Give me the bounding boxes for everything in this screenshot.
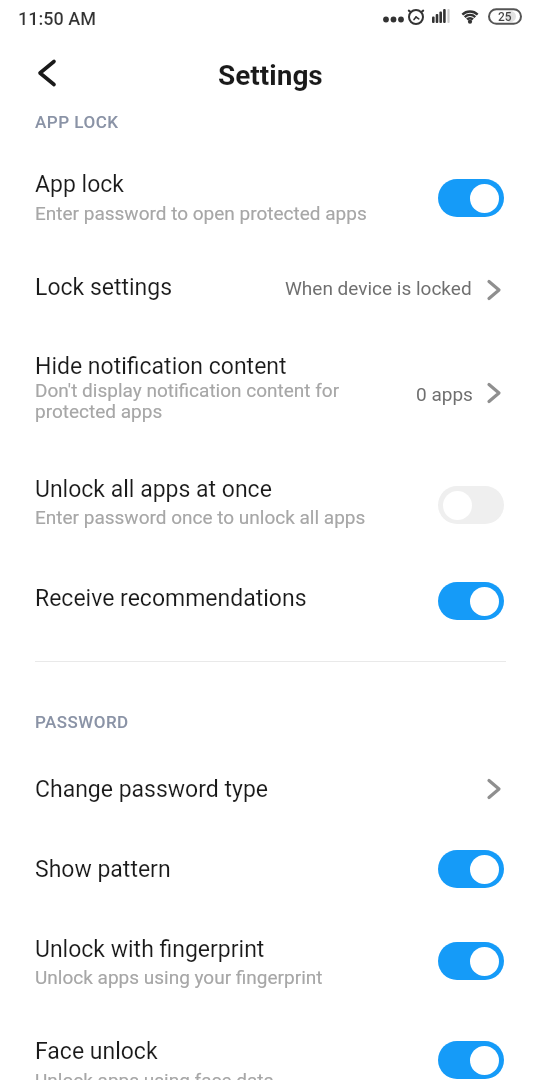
staticText: Settings [218, 59, 323, 92]
button[interactable] [0, 245, 540, 340]
button[interactable] [0, 145, 540, 245]
button[interactable] [36, 60, 60, 86]
staticText: Unlock all apps at once [35, 476, 272, 503]
staticText: Enter password once to unlock all apps [35, 506, 366, 528]
button[interactable] [438, 942, 504, 980]
button[interactable] [438, 179, 504, 217]
button[interactable] [0, 750, 540, 830]
staticText: 0 apps [416, 383, 473, 405]
button[interactable] [0, 450, 540, 560]
button[interactable] [438, 850, 504, 888]
staticText: App lock [35, 171, 124, 198]
staticText: Receive recommendations [35, 585, 307, 612]
button[interactable] [438, 1041, 504, 1079]
staticText: Face unlock [35, 1038, 158, 1065]
staticText: When device is locked [285, 277, 472, 299]
staticText: Enter password to open protected apps [35, 202, 367, 224]
staticText: PASSWORD [35, 712, 129, 732]
staticText: Don't display notification content for p… [35, 379, 365, 423]
button[interactable] [0, 340, 540, 450]
button[interactable] [0, 1012, 540, 1080]
staticText: Change password type [35, 776, 269, 803]
staticText: Show pattern [35, 856, 171, 883]
staticText: 11:50 AM [18, 8, 96, 29]
staticText: Unlock with fingerprint [35, 936, 265, 963]
button[interactable] [438, 486, 504, 524]
staticText: Unlock apps using your fingerprint [35, 966, 323, 988]
button[interactable] [0, 830, 540, 910]
staticText: Hide notification content [35, 353, 287, 380]
staticText: 25 [498, 10, 512, 24]
staticText: Lock settings [35, 274, 173, 301]
staticText: Unlock apps using face data [35, 1069, 274, 1080]
button[interactable] [0, 910, 540, 1012]
button[interactable] [0, 560, 540, 645]
button[interactable] [438, 582, 504, 620]
staticText: APP LOCK [35, 112, 119, 132]
